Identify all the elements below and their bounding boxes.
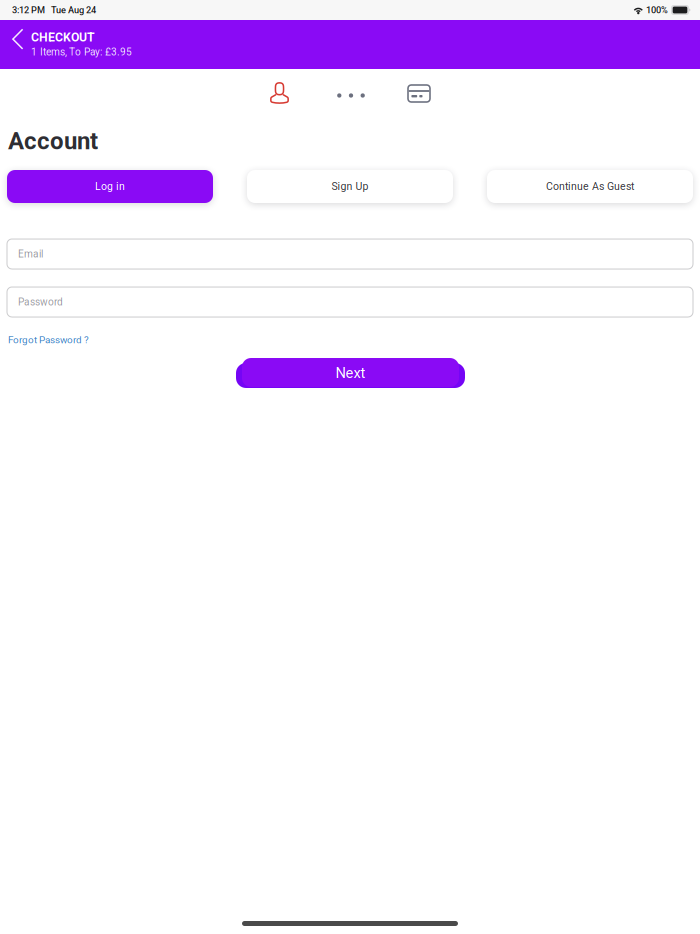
button[interactable]: Forgot Password ? [8,333,92,347]
button[interactable]: Sign Up [247,170,453,203]
staticText: CHECKOUT [31,30,95,44]
button[interactable]: Next [236,358,465,388]
button[interactable]: Log in [7,170,213,203]
staticText: Forgot Password ? [8,334,89,346]
staticText: Log in [95,180,125,193]
staticText: 3:12 PM [12,5,45,15]
staticText: Email [18,248,43,260]
staticText: 1 Items, To Pay: £3.95 [31,46,132,58]
button[interactable]: Back [5,24,31,54]
staticText: Account [8,127,98,155]
staticText: Tue Aug 24 [51,5,96,15]
staticText: Continue As Guest [546,180,634,193]
staticText: 100% [646,5,668,15]
staticText: Password [18,296,63,308]
button[interactable]: Continue As Guest [487,170,693,203]
staticText: Next [335,364,365,382]
staticText: Sign Up [331,180,368,193]
